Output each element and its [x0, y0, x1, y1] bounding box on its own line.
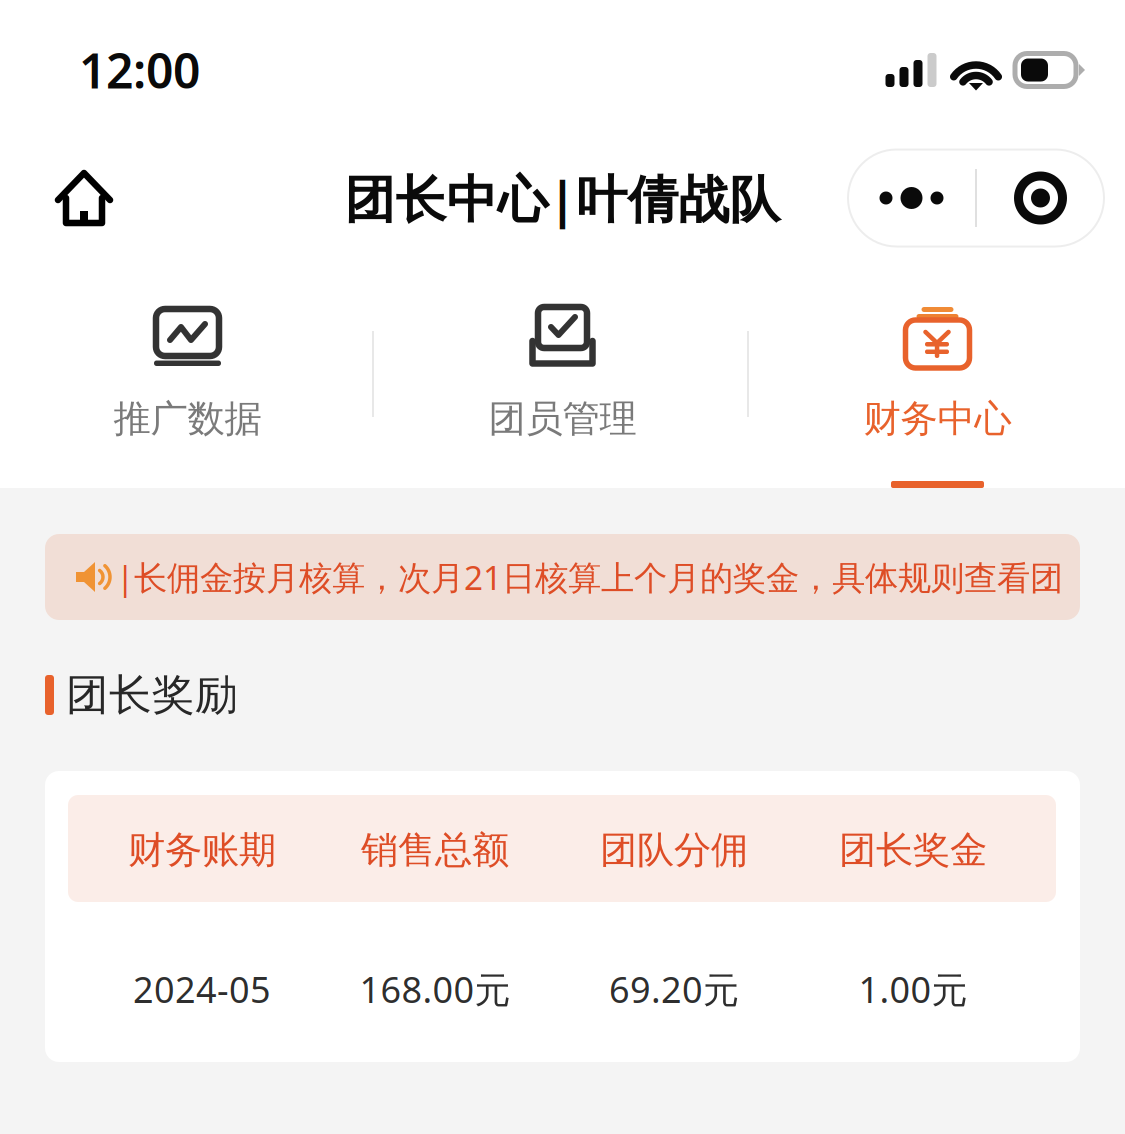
button[interactable]: 推广数据 — [0, 270, 375, 488]
button[interactable]: Close — [977, 149, 1104, 246]
button[interactable]: 团员管理 — [375, 270, 750, 488]
staticText: 销售总额 — [361, 827, 509, 873]
button[interactable]: |长佣金按月核算，次月21日核算上个月的奖金，具体规则查看团 — [45, 534, 1080, 620]
staticText: 168.00元 — [359, 965, 510, 1013]
staticText: 69.20元 — [609, 965, 739, 1013]
button[interactable]: More — [848, 149, 975, 246]
staticText: 团员管理 — [488, 396, 636, 442]
staticText: 团长中心|叶倩战队 — [344, 164, 780, 232]
staticText: 财务账期 — [128, 827, 276, 873]
button[interactable]: Home — [29, 149, 139, 246]
staticText: 12:00 — [79, 38, 200, 102]
staticText: 1.00元 — [858, 965, 967, 1013]
staticText: 财务中心 — [863, 396, 1011, 442]
staticText: |长佣金按月核算，次月21日核算上个月的奖金，具体规则查看团 — [116, 555, 1063, 599]
button[interactable]: 财务中心 — [750, 270, 1125, 488]
staticText: 2024-05 — [133, 965, 271, 1013]
staticText: 团长奖金 — [839, 827, 987, 873]
staticText: 团长奖励 — [66, 669, 238, 721]
staticText: 团队分佣 — [600, 827, 748, 873]
staticText: 推广数据 — [113, 396, 261, 442]
